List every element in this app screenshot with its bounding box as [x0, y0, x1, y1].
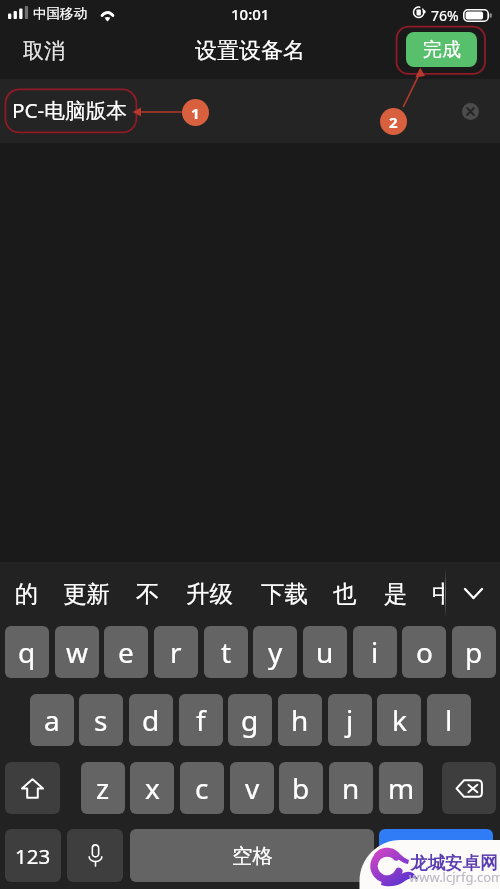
button[interactable]: q	[5, 626, 49, 678]
button[interactable]: 换行	[379, 829, 493, 882]
staticText: k	[392, 701, 407, 739]
button[interactable]: 是	[384, 563, 408, 624]
staticText: 更新	[63, 579, 110, 609]
button[interactable]: p	[452, 626, 496, 678]
staticText: z	[96, 769, 110, 807]
button[interactable]: 下载	[261, 563, 308, 624]
staticText: 的	[15, 579, 39, 609]
staticText: c	[195, 769, 209, 807]
staticText: q	[18, 633, 36, 671]
button[interactable]: g	[228, 694, 272, 746]
staticText: www.lcjrfg.com	[409, 868, 500, 886]
button[interactable]: d	[129, 694, 173, 746]
button[interactable]: a	[30, 694, 74, 746]
staticText: 是	[384, 579, 408, 609]
staticText: m	[388, 769, 415, 807]
staticText: 龙城安卓网	[410, 852, 498, 874]
button[interactable]: 升级	[186, 563, 233, 624]
button[interactable]: u	[303, 626, 347, 678]
staticText: t	[221, 633, 232, 671]
staticText: o	[416, 633, 433, 671]
button[interactable]: n	[329, 762, 373, 814]
staticText: u	[316, 633, 334, 671]
staticText: e	[118, 633, 134, 671]
button[interactable]: o	[402, 626, 446, 678]
button[interactable]: e	[104, 626, 148, 678]
button[interactable]: 的	[15, 563, 39, 624]
staticText: PC-电脑版本	[12, 96, 128, 124]
staticText: g	[241, 701, 259, 739]
button[interactable]: b	[279, 762, 323, 814]
staticText: 也	[333, 579, 357, 609]
button[interactable]: 更新	[63, 563, 110, 624]
button[interactable]: 中	[432, 563, 444, 624]
button[interactable]: s	[79, 694, 123, 746]
button[interactable]: 不	[136, 563, 160, 624]
staticText: 123	[15, 842, 51, 870]
button[interactable]: Voice input	[67, 829, 123, 882]
button[interactable]: j	[328, 694, 372, 746]
button[interactable]: Hide keyboard	[455, 575, 491, 611]
staticText: s	[94, 701, 108, 739]
staticText: i	[371, 633, 379, 671]
staticText: 中国移动	[33, 5, 87, 22]
staticText: l	[445, 701, 453, 739]
button[interactable]: 空格	[130, 829, 374, 882]
button[interactable]: 完成	[406, 32, 477, 67]
button[interactable]: Backspace	[442, 762, 496, 814]
button[interactable]: Clear text	[453, 94, 487, 128]
button[interactable]: Shift	[5, 762, 60, 814]
button[interactable]: v	[230, 762, 274, 814]
button[interactable]: x	[130, 762, 174, 814]
staticText: 设置设备名	[195, 37, 305, 65]
staticText: b	[292, 769, 310, 807]
staticText: v	[245, 769, 260, 807]
staticText: w	[66, 633, 89, 671]
staticText: x	[145, 769, 160, 807]
staticText: 中	[432, 579, 444, 609]
staticText: 2	[389, 112, 398, 132]
staticText: f	[196, 701, 206, 739]
button[interactable]: c	[180, 762, 224, 814]
staticText: y	[268, 633, 283, 671]
staticText: 升级	[186, 579, 233, 609]
staticText: n	[342, 769, 360, 807]
staticText: j	[346, 701, 354, 739]
button[interactable]: r	[154, 626, 198, 678]
button[interactable]: l	[427, 694, 471, 746]
staticText: 换行	[417, 844, 455, 868]
button[interactable]: 取消	[7, 25, 81, 76]
staticText: 下载	[261, 579, 308, 609]
button[interactable]: 也	[333, 563, 357, 624]
staticText: d	[142, 701, 160, 739]
button[interactable]: 123	[5, 829, 61, 882]
staticText: 不	[136, 579, 160, 609]
button[interactable]: h	[278, 694, 322, 746]
button[interactable]: m	[379, 762, 423, 814]
button[interactable]: f	[179, 694, 223, 746]
button[interactable]: k	[377, 694, 421, 746]
staticText: 空格	[232, 843, 273, 869]
button[interactable]: y	[253, 626, 297, 678]
staticText: 76%	[431, 6, 459, 25]
staticText: a	[44, 701, 60, 739]
staticText: 10:01	[231, 4, 270, 24]
staticText: 完成	[423, 38, 461, 62]
staticText: r	[170, 633, 182, 671]
button[interactable]: w	[55, 626, 99, 678]
button[interactable]: z	[81, 762, 125, 814]
button[interactable]: i	[353, 626, 397, 678]
staticText: p	[465, 633, 483, 671]
staticText: h	[291, 701, 309, 739]
staticText: 取消	[23, 38, 65, 64]
staticText: 1	[191, 103, 200, 123]
button[interactable]: t	[204, 626, 248, 678]
